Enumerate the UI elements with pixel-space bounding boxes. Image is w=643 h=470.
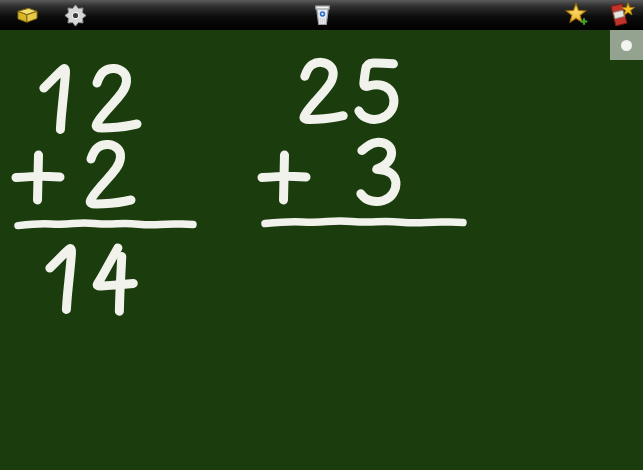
button[interactable]: Exercise book — [605, 1, 635, 29]
button[interactable]: Panel handle — [610, 30, 643, 60]
button[interactable]: New exercise — [563, 2, 591, 28]
button[interactable]: Packages — [12, 4, 38, 26]
button[interactable]: Clear board — [310, 2, 334, 29]
button[interactable]: Settings — [62, 3, 88, 28]
